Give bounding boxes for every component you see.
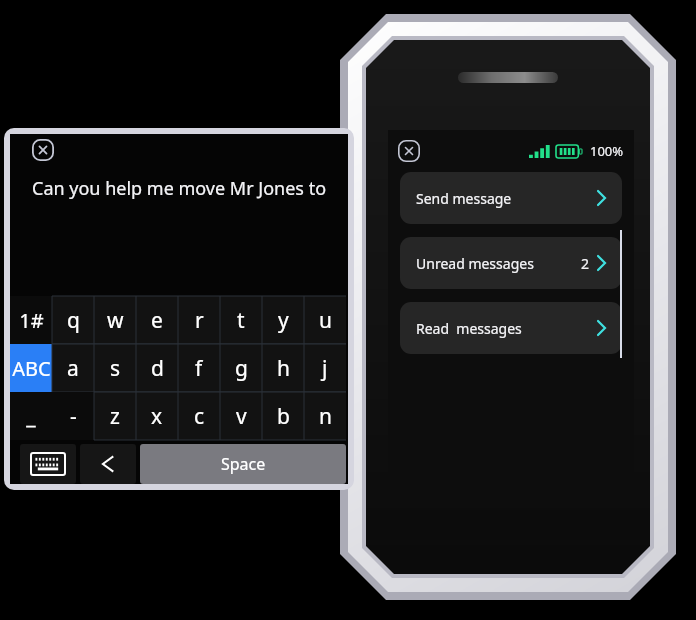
staticText: w xyxy=(107,306,124,335)
button[interactable]: u xyxy=(304,296,346,344)
button[interactable]: f xyxy=(178,344,220,392)
staticText: z xyxy=(110,402,120,431)
staticText: c xyxy=(194,402,205,431)
staticText: r xyxy=(195,306,204,335)
button[interactable]: a xyxy=(52,344,94,392)
button[interactable]: d xyxy=(136,344,178,392)
button[interactable]: v xyxy=(220,392,262,440)
button[interactable]: b xyxy=(262,392,304,440)
button[interactable]: Keyboard xyxy=(20,444,76,484)
button[interactable]: z xyxy=(94,392,136,440)
staticText: 100% xyxy=(590,142,624,160)
staticText: y xyxy=(278,306,289,335)
staticText: Read messages xyxy=(416,319,522,338)
staticText: v xyxy=(236,402,247,431)
staticText: Send message xyxy=(416,189,512,208)
button[interactable]: e xyxy=(136,296,178,344)
staticText: Can you help me move Mr Jones to xyxy=(32,176,331,201)
button[interactable]: ABC xyxy=(10,344,52,392)
button[interactable]: y xyxy=(262,296,304,344)
staticText: g xyxy=(235,354,248,383)
button[interactable]: 1# xyxy=(10,296,52,344)
staticText: Unread messages xyxy=(416,254,534,273)
button[interactable]: Back xyxy=(80,444,136,484)
staticText: b xyxy=(277,402,290,431)
button[interactable]: Send message xyxy=(400,172,622,224)
button[interactable]: g xyxy=(220,344,262,392)
staticText: d xyxy=(151,354,164,383)
staticText: h xyxy=(277,354,290,383)
button[interactable]: Space xyxy=(140,444,346,484)
button[interactable]: n xyxy=(304,392,346,440)
button[interactable]: w xyxy=(94,296,136,344)
staticText: 1# xyxy=(19,307,44,334)
staticText: ABC xyxy=(12,355,51,382)
staticText: e xyxy=(151,306,163,335)
button[interactable]: Close xyxy=(398,140,420,162)
staticText: 2 xyxy=(581,254,590,273)
button[interactable]: c xyxy=(178,392,220,440)
staticText: _ xyxy=(26,402,36,431)
button[interactable]: j xyxy=(304,344,346,392)
staticText: n xyxy=(319,402,332,431)
button[interactable]: x xyxy=(136,392,178,440)
button[interactable]: h xyxy=(262,344,304,392)
staticText: q xyxy=(67,306,80,335)
staticText: x xyxy=(151,402,163,431)
staticText: t xyxy=(237,306,245,335)
staticText: s xyxy=(110,354,121,383)
button[interactable]: r xyxy=(178,296,220,344)
button[interactable]: s xyxy=(94,344,136,392)
button[interactable]: t xyxy=(220,296,262,344)
staticText: Space xyxy=(221,453,266,475)
staticText: a xyxy=(67,354,79,383)
staticText: u xyxy=(319,306,332,335)
button[interactable]: Read messages xyxy=(400,302,622,354)
staticText: - xyxy=(70,402,77,431)
button[interactable]: _ xyxy=(10,392,52,440)
button[interactable]: Unread messages xyxy=(400,237,622,289)
button[interactable]: - xyxy=(52,392,94,440)
staticText: f xyxy=(195,354,203,383)
button[interactable]: Close xyxy=(32,139,59,161)
button[interactable]: q xyxy=(52,296,94,344)
staticText: j xyxy=(322,354,328,383)
